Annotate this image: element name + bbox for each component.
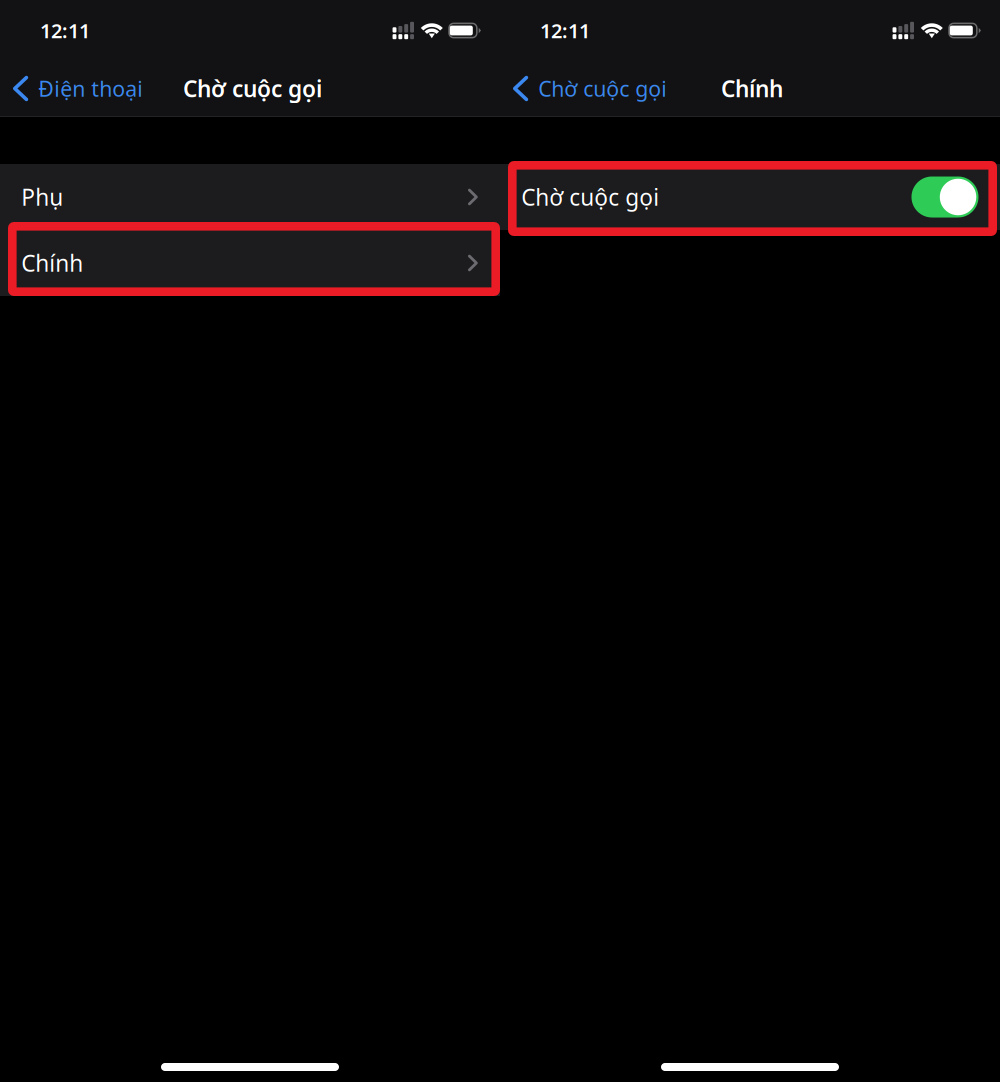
- staticText: Chờ cuộc gọi: [538, 74, 667, 103]
- staticText: Chờ cuộc gọi: [183, 73, 322, 103]
- button[interactable]: Phụ: [0, 164, 500, 230]
- staticText: Chính: [21, 248, 83, 278]
- staticText: 12:11: [540, 17, 590, 44]
- button[interactable]: Chờ cuộc gọi: [500, 164, 1000, 230]
- button[interactable]: Chính: [0, 230, 500, 296]
- button[interactable]: Chờ cuộc gọi: [500, 59, 679, 118]
- button[interactable]: Điện thoại: [0, 59, 155, 118]
- staticText: Chờ cuộc gọi: [521, 182, 659, 212]
- button[interactable]: Chờ cuộc gọi, bật: [911, 176, 978, 217]
- staticText: Điện thoại: [38, 74, 143, 103]
- staticText: Chính: [721, 73, 783, 103]
- staticText: 12:11: [40, 17, 90, 44]
- staticText: Phụ: [21, 182, 63, 212]
